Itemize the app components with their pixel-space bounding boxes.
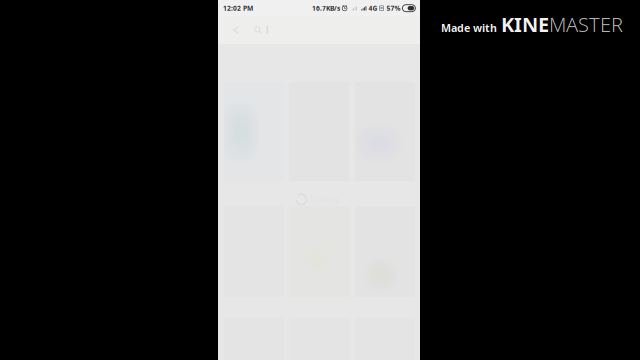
staticText: 12:02 PM — [223, 4, 253, 13]
staticText: KINE — [501, 11, 549, 38]
staticText: 4G — [369, 4, 378, 13]
staticText: 57% — [386, 4, 400, 13]
staticText: 16.7KB/s — [312, 4, 340, 13]
staticText: MASTER — [549, 11, 623, 38]
staticText: Made with — [441, 21, 497, 35]
